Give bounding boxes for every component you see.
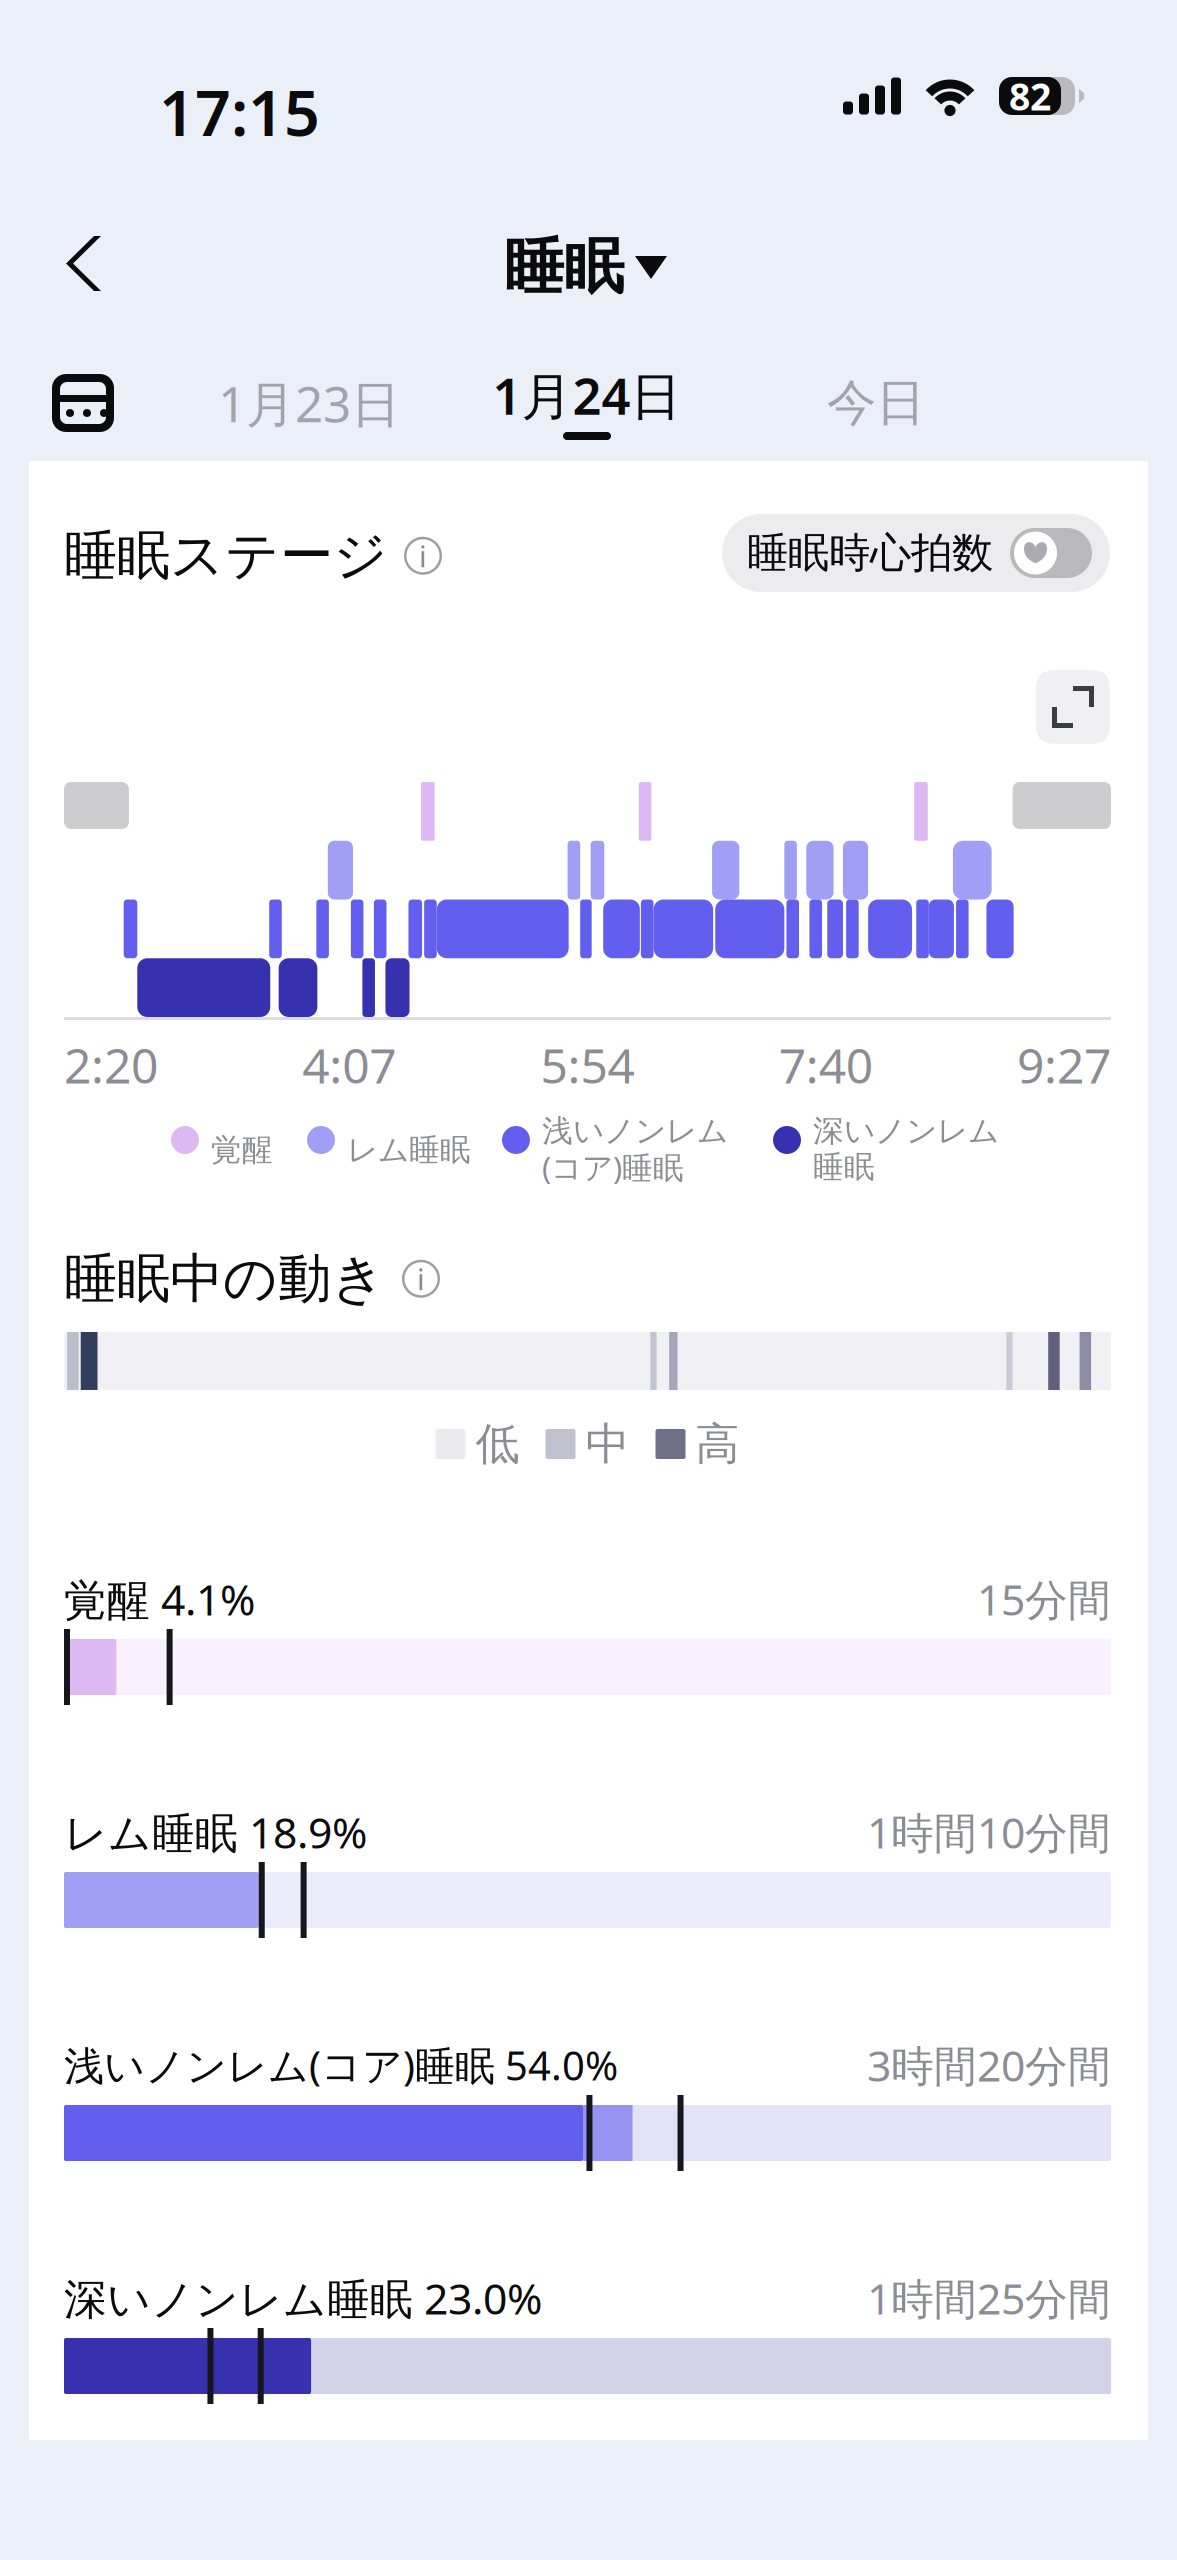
button[interactable]: 拡大: [1036, 670, 1110, 744]
staticText: 1月24日: [492, 361, 681, 429]
staticText: 今日: [827, 373, 925, 433]
staticText: 睡眠時心拍数: [747, 528, 993, 578]
staticText: (コア)睡眠: [542, 1147, 684, 1187]
staticText: レム睡眠 18.9%: [64, 1804, 367, 1860]
button[interactable]: 戻る: [32, 208, 135, 319]
staticText: レム睡眠: [347, 1131, 471, 1169]
staticText: 9:27: [1017, 1033, 1111, 1097]
staticText: 覚醒: [211, 1131, 273, 1169]
staticText: 睡眠: [504, 230, 624, 304]
staticText: 5:54: [540, 1033, 634, 1097]
staticText: 深いノンレム: [813, 1112, 999, 1150]
staticText: 15分間: [977, 1571, 1111, 1627]
staticText: 睡眠ステージ: [64, 523, 388, 588]
staticText: i: [419, 536, 427, 575]
button[interactable]: 今日: [791, 352, 961, 454]
staticText: 1時間10分間: [867, 1804, 1111, 1860]
button[interactable]: 1月23日: [203, 352, 415, 454]
staticText: 睡眠中の動き: [64, 1246, 386, 1311]
staticText: 中: [585, 1417, 629, 1471]
staticText: 浅いノンレム: [542, 1112, 728, 1150]
staticText: 浅いノンレム(コア)睡眠 54.0%: [64, 2038, 618, 2091]
staticText: 3時間20分間: [867, 2037, 1111, 2093]
staticText: 低: [475, 1417, 519, 1471]
staticText: 17:15: [159, 70, 320, 153]
staticText: 2:20: [64, 1033, 158, 1097]
button[interactable]: 睡眠時心拍数: [722, 514, 1110, 592]
staticText: 深いノンレム睡眠 23.0%: [64, 2270, 542, 2326]
staticText: 高: [695, 1417, 739, 1471]
staticText: 睡眠: [813, 1148, 875, 1186]
staticText: 4:07: [302, 1033, 396, 1097]
staticText: 7:40: [779, 1033, 873, 1097]
button[interactable]: 1月24日: [479, 352, 695, 454]
staticText: 82: [1009, 71, 1051, 121]
staticText: 1時間25分間: [867, 2270, 1111, 2326]
staticText: 覚醒 4.1%: [64, 1571, 255, 1627]
staticText: 1月23日: [218, 370, 400, 436]
staticText: i: [417, 1259, 425, 1298]
button[interactable]: カレンダー: [28, 352, 138, 454]
